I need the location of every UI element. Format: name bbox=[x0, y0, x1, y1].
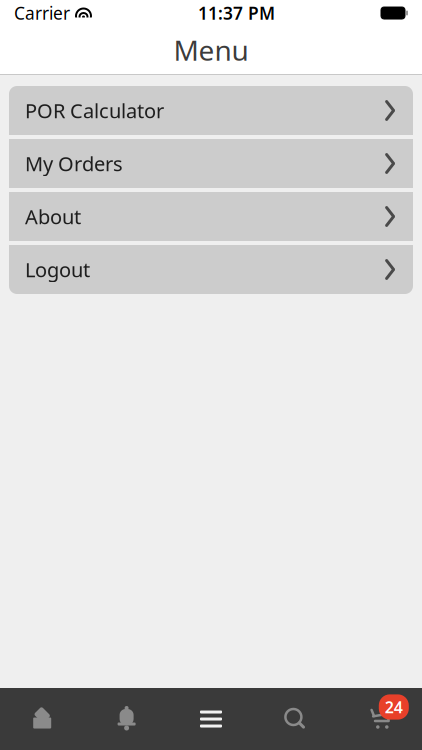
button[interactable]: Menu bbox=[169, 688, 253, 750]
staticText: Carrier bbox=[14, 1, 70, 24]
button[interactable]: Notifications bbox=[84, 688, 169, 750]
staticText: My Orders bbox=[25, 150, 123, 177]
button[interactable]: Cart, 24 items bbox=[338, 688, 422, 750]
button[interactable]: My Orders bbox=[9, 139, 413, 188]
staticText: POR Calculator bbox=[25, 97, 164, 124]
button[interactable]: About bbox=[9, 192, 413, 241]
staticText: Logout bbox=[25, 256, 90, 283]
staticText: 11:37 PM bbox=[198, 1, 275, 24]
staticText: About bbox=[25, 203, 81, 230]
button[interactable]: Search bbox=[253, 688, 338, 750]
staticText: 24 bbox=[385, 696, 403, 718]
staticText: Menu bbox=[173, 31, 248, 69]
button[interactable]: POR Calculator bbox=[9, 86, 413, 135]
button[interactable]: Logout bbox=[9, 245, 413, 294]
button[interactable]: Home bbox=[0, 688, 84, 750]
